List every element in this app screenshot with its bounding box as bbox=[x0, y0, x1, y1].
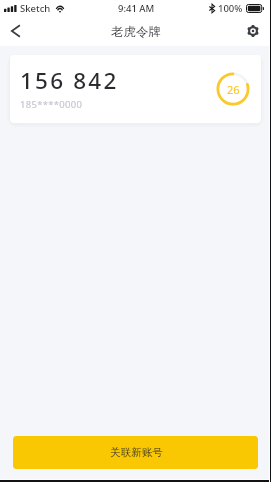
button[interactable]: 156 842 bbox=[10, 55, 261, 123]
staticText: 156 842 bbox=[20, 65, 119, 96]
staticText: 老虎令牌 bbox=[111, 24, 161, 40]
button[interactable]: Settings bbox=[237, 18, 269, 44]
button[interactable]: Back bbox=[0, 18, 30, 44]
staticText: 9:41 AM bbox=[118, 2, 155, 15]
button[interactable]: 关联新账号 bbox=[13, 436, 258, 469]
staticText: 关联新账号 bbox=[110, 446, 163, 459]
staticText: 100% bbox=[218, 2, 243, 15]
staticText: 26 bbox=[227, 82, 240, 97]
staticText: 185****0000 bbox=[20, 98, 83, 111]
staticText: Sketch bbox=[20, 2, 51, 15]
